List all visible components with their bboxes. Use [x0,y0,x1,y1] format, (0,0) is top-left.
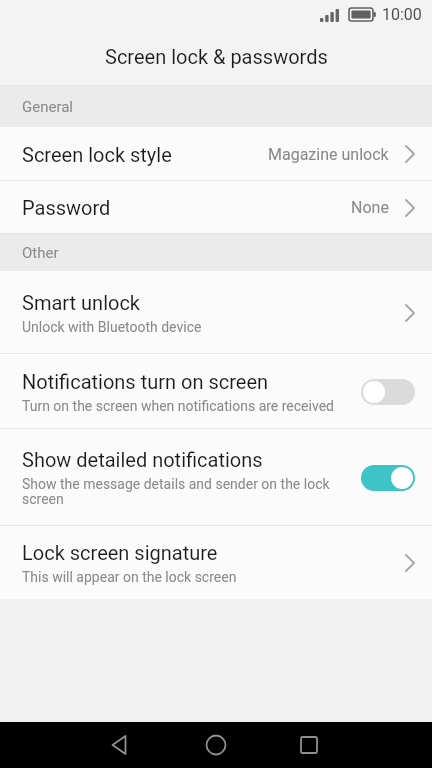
staticText: 10:00 [382,5,422,24]
button[interactable]: Show detailed notifications [0,429,432,526]
staticText: Notifications turn on screen [22,370,269,393]
staticText: Lock screen signature [22,541,218,564]
staticText: Screen lock & passwords [105,45,328,68]
staticText: Unlock with Bluetooth device [22,319,202,335]
button[interactable]: Screen lock style [0,127,432,181]
staticText: Other [22,244,59,262]
button[interactable] [109,734,131,756]
button[interactable]: Password [0,181,432,234]
button[interactable]: Notifications turn on screen [0,354,432,429]
button[interactable] [205,734,227,756]
staticText: None [351,198,389,217]
staticText: Smart unlock [22,291,141,314]
button[interactable]: Smart unlock [0,271,432,354]
staticText: Turn on the screen when notifications ar… [22,398,334,414]
staticText: This will appear on the lock screen [22,569,237,585]
staticText: Show detailed notifications [22,448,263,471]
button[interactable] [298,734,320,756]
staticText: Show the message details and sender on t… [22,476,330,507]
staticText: General [22,98,74,116]
staticText: Screen lock style [22,143,172,166]
staticText: Magazine unlock [268,145,389,164]
staticText: Password [22,196,111,219]
button[interactable] [361,379,415,405]
button[interactable] [361,465,415,491]
button[interactable]: Lock screen signature [0,526,432,599]
